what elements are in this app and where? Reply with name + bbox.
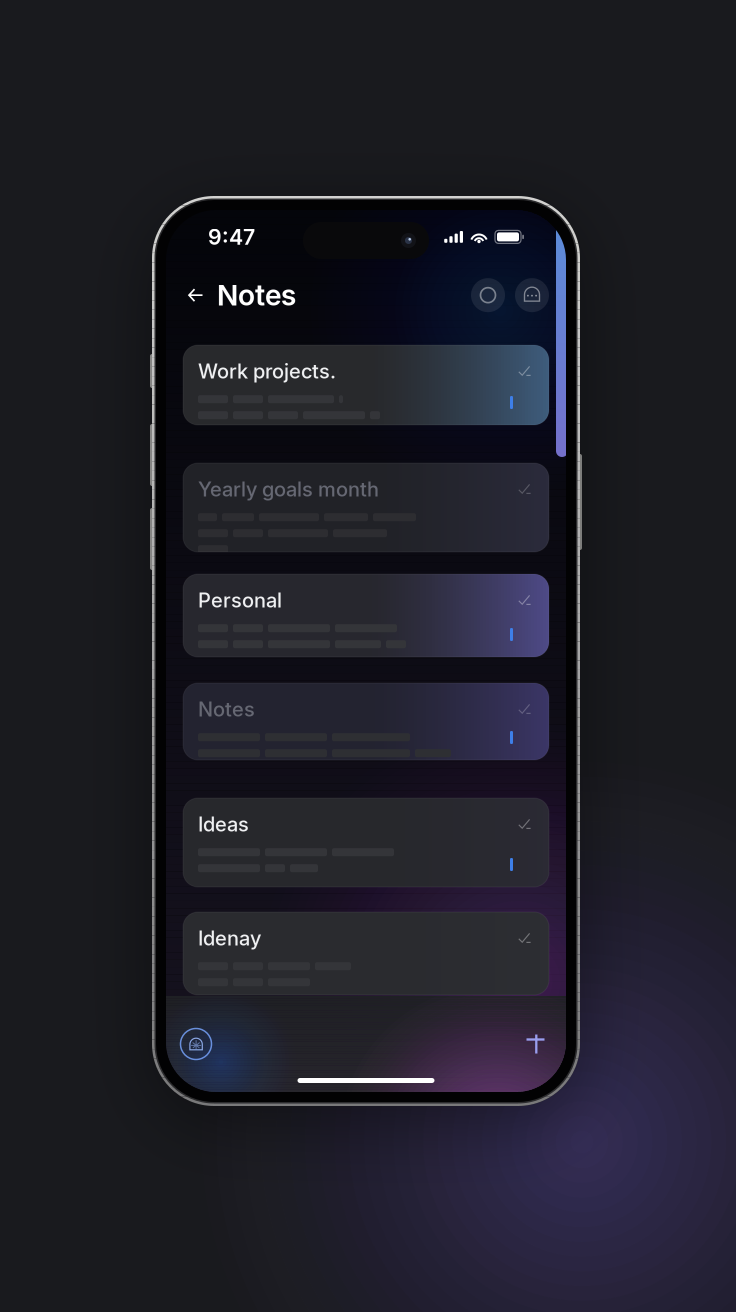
button[interactable]: New note	[513, 1021, 558, 1067]
staticText: Ideas	[198, 812, 249, 836]
button[interactable]: Work projects.	[183, 345, 549, 425]
staticText: Notes	[198, 697, 255, 721]
staticText: Notes	[217, 278, 296, 312]
button[interactable]: Yearly goals month	[183, 463, 549, 552]
button[interactable]: Note options	[515, 278, 549, 312]
button[interactable]: Back	[183, 283, 209, 308]
button[interactable]: Personal	[183, 574, 549, 657]
button[interactable]: Record audio	[471, 278, 505, 312]
staticText: 9:47	[208, 224, 255, 250]
staticText: Work projects.	[198, 359, 336, 383]
button[interactable]: Ideas	[183, 798, 549, 887]
button[interactable]: Idenay	[183, 912, 549, 995]
staticText: Yearly goals month	[198, 477, 379, 501]
staticText: Personal	[198, 588, 282, 612]
button[interactable]: Notes	[183, 683, 549, 760]
button[interactable]: AI assistant	[174, 1022, 218, 1066]
staticText: Idenay	[198, 926, 261, 950]
